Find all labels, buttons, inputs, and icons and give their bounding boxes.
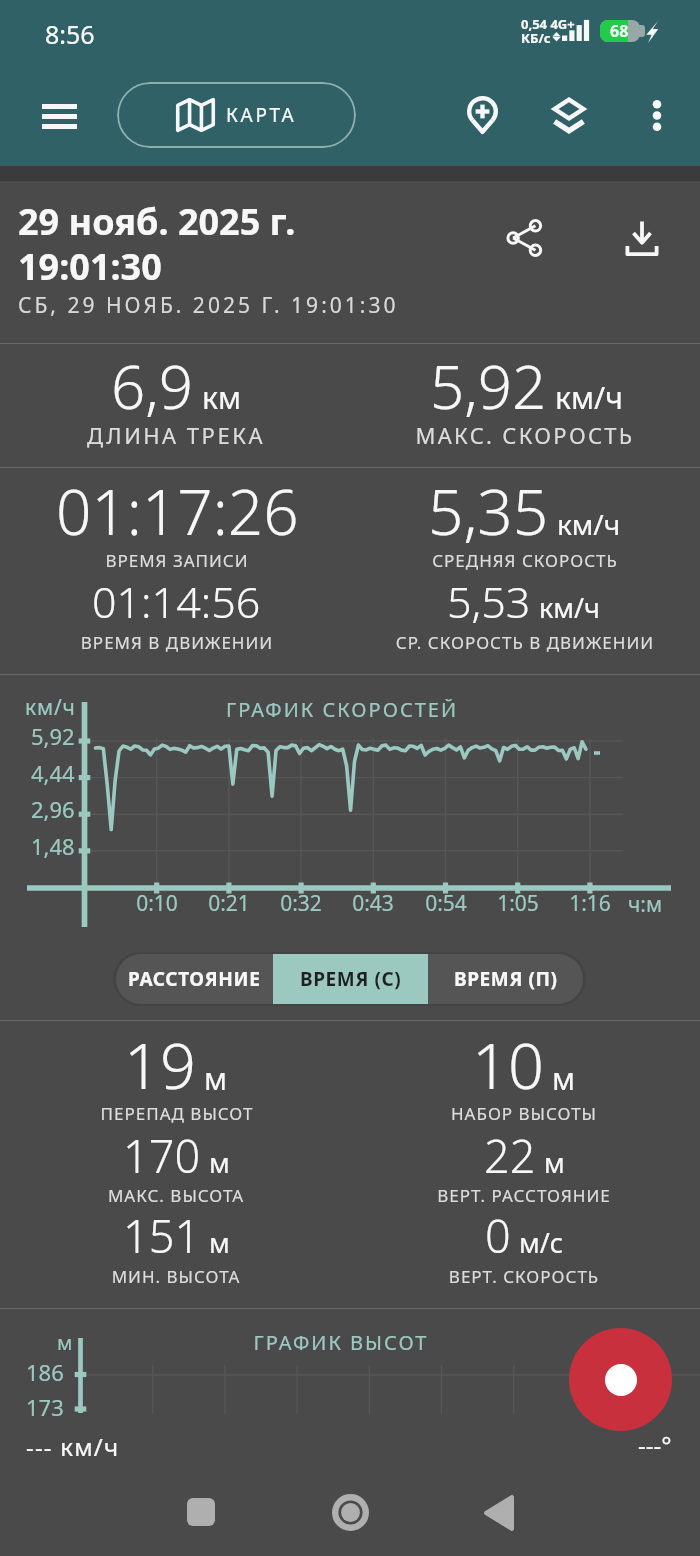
button[interactable]: Back xyxy=(459,1475,539,1551)
button[interactable]: Home xyxy=(310,1474,390,1550)
button[interactable]: Map layers xyxy=(537,81,601,149)
button[interactable]: Menu xyxy=(25,86,93,146)
staticText: 0:21 xyxy=(184,889,274,918)
staticText: 2,96 xyxy=(31,794,75,824)
staticText: 0:54 xyxy=(401,889,491,918)
staticText: км xyxy=(202,377,241,418)
staticText: 0 xyxy=(485,1205,511,1266)
staticText: ВЕРТ. РАССТОЯНИЕ xyxy=(174,1184,700,1207)
button[interactable]: ВРЕМЯ (П) xyxy=(428,954,583,1004)
staticText: ДЛИНА ТРЕКА xyxy=(0,420,526,450)
staticText: 01:17:26 xyxy=(56,469,299,553)
staticText: 170 xyxy=(123,1125,201,1186)
staticText: ВЕРТ. СКОРОСТЬ xyxy=(174,1265,700,1288)
staticText: м xyxy=(552,1058,576,1099)
staticText: 186 xyxy=(26,1357,64,1387)
staticText: 4,44 xyxy=(31,758,75,788)
staticText: РАССТОЯНИЕ xyxy=(128,966,261,992)
staticText: 0:10 xyxy=(112,889,202,918)
staticText: 5,92 xyxy=(31,721,75,751)
staticText: м xyxy=(544,1144,565,1181)
staticText: ГРАФИК СКОРОСТЕЙ xyxy=(0,696,692,723)
staticText: 0:32 xyxy=(256,889,346,918)
staticText: 1:05 xyxy=(473,889,563,918)
staticText: 68 xyxy=(610,20,629,42)
button[interactable]: Add waypoint xyxy=(451,81,513,149)
staticText: 19 xyxy=(124,1022,196,1108)
staticText: м/с xyxy=(519,1224,564,1261)
staticText: МАКС. СКОРОСТЬ xyxy=(175,420,700,450)
staticText: 8:56 xyxy=(45,17,95,51)
staticText: КАРТА xyxy=(226,102,297,128)
staticText: м xyxy=(209,1144,230,1181)
staticText: км/ч xyxy=(557,505,621,543)
staticText: 29 нояб. 2025 г. 19:01:30 xyxy=(18,197,296,290)
staticText: 151 xyxy=(123,1205,201,1266)
staticText: км/ч xyxy=(25,693,76,722)
button[interactable]: Share xyxy=(493,206,557,270)
staticText: 5,53 xyxy=(447,572,531,631)
button[interactable]: More options xyxy=(627,81,686,149)
staticText: СБ, 29 НОЯБ. 2025 Г. 19:01:30 xyxy=(18,291,399,320)
staticText: ВРЕМЯ В ДВИЖЕНИИ xyxy=(0,631,527,654)
staticText: 22 xyxy=(484,1125,536,1186)
staticText: км/ч xyxy=(539,589,601,626)
staticText: 6,9 xyxy=(111,345,194,427)
staticText: ВРЕМЯ (С) xyxy=(300,966,402,992)
staticText: км/ч xyxy=(555,377,623,418)
button[interactable]: КАРТА xyxy=(117,82,356,148)
button[interactable]: ВРЕМЯ (С) xyxy=(273,954,428,1004)
button[interactable]: РАССТОЯНИЕ xyxy=(116,954,273,1004)
staticText: ---° xyxy=(638,1428,672,1461)
staticText: 01:14:56 xyxy=(92,572,261,631)
staticText: КБ/с xyxy=(521,29,551,47)
staticText: 1,48 xyxy=(31,831,75,861)
staticText: ГРАФИК ВЫСОТ xyxy=(0,1329,691,1356)
staticText: МАКС. ВЫСОТА xyxy=(0,1184,526,1207)
staticText: 5,92 xyxy=(430,345,547,427)
staticText: ВРЕМЯ (П) xyxy=(454,966,558,992)
button[interactable]: Recent apps xyxy=(160,1474,241,1550)
staticText: СРЕДНЯЯ СКОРОСТЬ xyxy=(175,549,700,572)
staticText: ВРЕМЯ ЗАПИСИ xyxy=(0,549,527,572)
staticText: м xyxy=(57,1329,73,1356)
staticText: 0,54 4G+ xyxy=(521,15,575,33)
staticText: --- км/ч xyxy=(26,1430,120,1463)
button[interactable]: Download xyxy=(610,206,674,270)
staticText: 173 xyxy=(26,1392,64,1422)
button[interactable]: Start recording xyxy=(569,1328,672,1431)
staticText: 5,35 xyxy=(428,469,549,553)
staticText: 0:43 xyxy=(328,889,418,918)
staticText: ч:м xyxy=(605,890,685,919)
staticText: НАБОР ВЫСОТЫ xyxy=(174,1102,700,1125)
staticText: МИН. ВЫСОТА xyxy=(0,1265,526,1288)
staticText: м xyxy=(204,1058,228,1099)
staticText: 10 xyxy=(472,1022,544,1108)
staticText: 1:16 xyxy=(545,889,635,918)
staticText: СР. СКОРОСТЬ В ДВИЖЕНИИ xyxy=(175,631,700,654)
staticText: м xyxy=(209,1224,230,1261)
staticText: ПЕРЕПАД ВЫСОТ xyxy=(0,1102,527,1125)
